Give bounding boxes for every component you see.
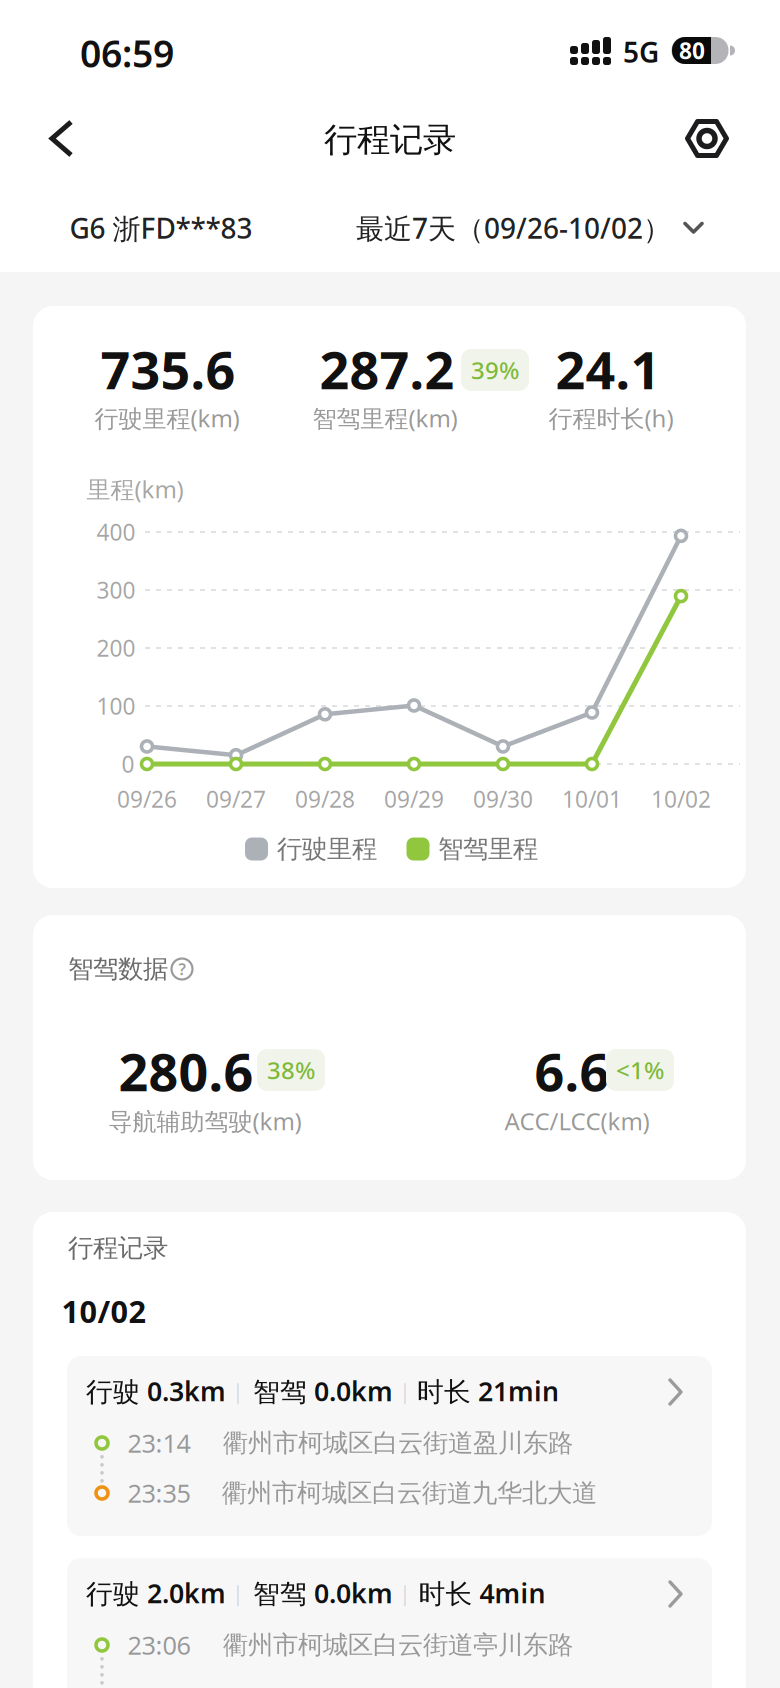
staticText: 23:06: [127, 1628, 190, 1662]
staticText: 智驾里程: [438, 833, 538, 864]
staticText: 智驾 0.0km: [253, 1373, 393, 1409]
staticText: |: [232, 1579, 244, 1607]
staticText: 行驶里程(km): [94, 402, 239, 434]
staticText: 行驶 2.0km: [86, 1575, 226, 1611]
staticText: 行程记录: [324, 119, 456, 160]
staticText: 智驾数据: [68, 953, 168, 984]
staticText: 280.6: [118, 1036, 253, 1106]
staticText: 时长 4min: [418, 1575, 545, 1611]
staticText: 衢州市柯城区白云街道亭川东路: [223, 1629, 573, 1660]
staticText: 100: [96, 691, 135, 721]
staticText: 行驶里程: [277, 833, 377, 864]
staticText: 09/29: [384, 784, 444, 814]
staticText: 10/02: [651, 784, 711, 814]
staticText: 23:35: [127, 1476, 190, 1510]
button[interactable]: 最近7天（09/26-10/02）: [356, 209, 704, 247]
staticText: ?: [178, 958, 185, 980]
staticText: |: [399, 1377, 411, 1405]
button[interactable]: About assisted-driving data: [169, 956, 195, 982]
staticText: 09/28: [295, 784, 355, 814]
staticText: ACC/LCC(km): [504, 1105, 649, 1137]
staticText: 衢州市柯城区白云街道盈川东路: [223, 1427, 573, 1458]
staticText: 行程时长(h): [548, 402, 673, 434]
staticText: 80: [679, 35, 705, 65]
staticText: 39%: [471, 354, 519, 386]
staticText: 6.6: [534, 1036, 609, 1106]
staticText: 10/01: [562, 784, 622, 814]
staticText: 里程(km): [86, 473, 183, 505]
staticText: 09/26: [117, 784, 177, 814]
staticText: 智驾 0.0km: [253, 1575, 393, 1611]
button[interactable]: 行驶 0.3km: [67, 1356, 712, 1536]
button[interactable]: Settings: [685, 116, 729, 160]
staticText: 时长 21min: [417, 1373, 559, 1409]
button[interactable]: G6 浙FD***83: [69, 209, 252, 247]
staticText: 23:14: [127, 1426, 190, 1460]
staticText: 735.6: [100, 334, 235, 404]
staticText: 10/02: [61, 1291, 146, 1331]
staticText: |: [399, 1579, 411, 1607]
staticText: 09/30: [473, 784, 533, 814]
staticText: 400: [96, 517, 135, 547]
staticText: 5G: [623, 33, 659, 71]
staticText: 300: [96, 575, 135, 605]
staticText: 200: [96, 633, 135, 663]
staticText: <1%: [616, 1054, 664, 1086]
staticText: 06:59: [80, 28, 174, 78]
staticText: 行程记录: [68, 1232, 168, 1263]
button[interactable]: 行驶 2.0km: [67, 1558, 712, 1688]
staticText: 24.1: [555, 334, 660, 404]
button[interactable]: Back: [40, 116, 84, 161]
staticText: 衢州市柯城区白云街道九华北大道: [222, 1477, 597, 1508]
staticText: G6 浙FD***83: [69, 209, 252, 247]
staticText: 最近7天（09/26-10/02）: [356, 209, 671, 247]
staticText: 行驶 0.3km: [86, 1373, 226, 1409]
staticText: 智驾里程(km): [312, 402, 457, 434]
staticText: 0: [121, 749, 134, 779]
staticText: 导航辅助驾驶(km): [108, 1105, 301, 1137]
staticText: 38%: [267, 1054, 315, 1086]
staticText: 287.2: [319, 334, 454, 404]
staticText: 09/27: [206, 784, 266, 814]
staticText: |: [232, 1377, 244, 1405]
